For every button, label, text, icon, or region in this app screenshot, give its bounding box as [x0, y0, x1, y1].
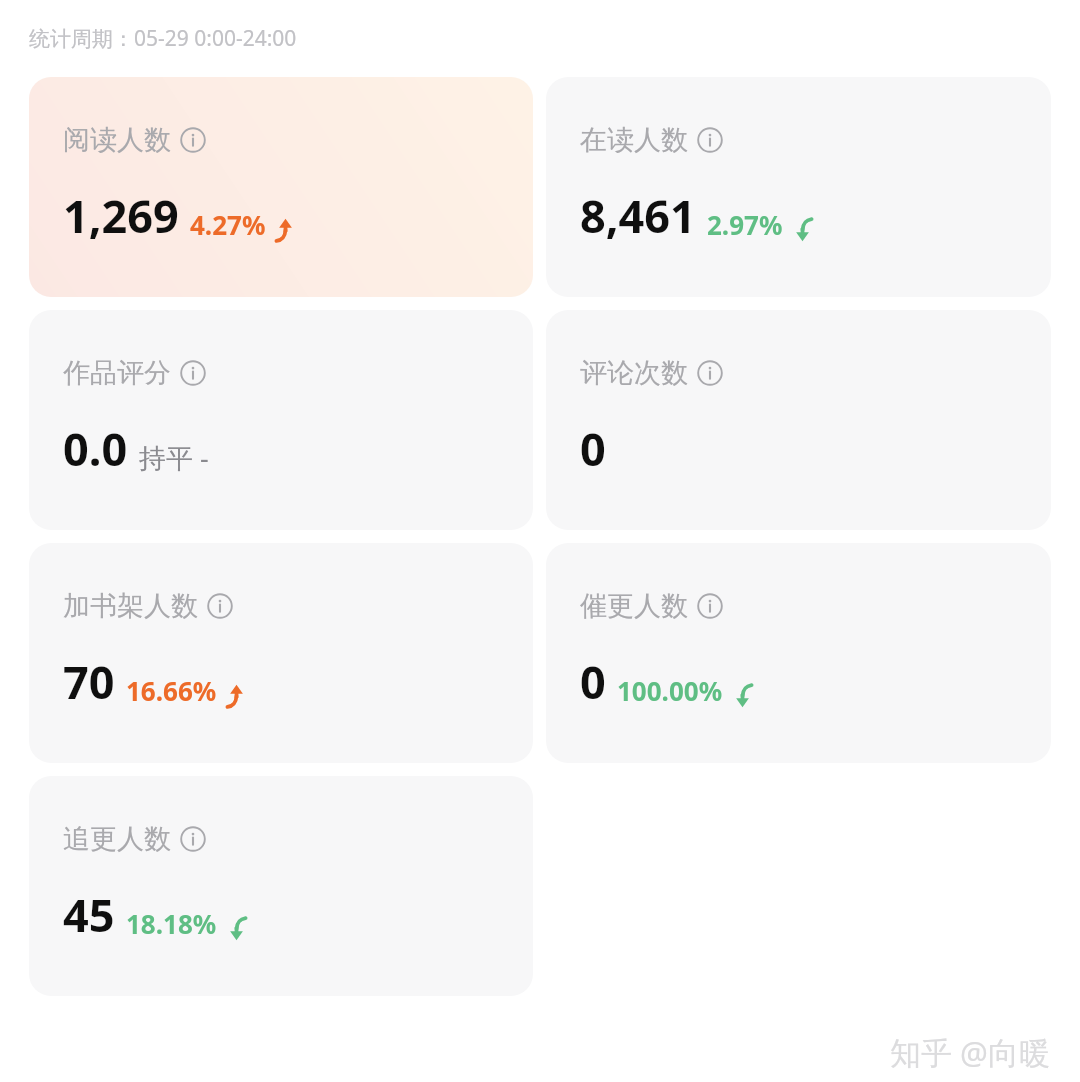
staticText: 4.27% [190, 207, 266, 242]
button[interactable]: 说明 [697, 593, 723, 619]
staticText: 1,269 [63, 185, 179, 246]
button[interactable]: 说明 [697, 360, 723, 386]
button[interactable]: 评论次数 [546, 310, 1051, 530]
staticText: 45 [63, 884, 115, 945]
button[interactable]: 阅读人数 [29, 77, 533, 297]
button[interactable]: 说明 [180, 826, 206, 852]
staticText: 统计周期：05-29 0:00-24:00 [29, 24, 297, 53]
staticText: 追更人数 [63, 822, 171, 856]
staticText: 持平 - [139, 439, 209, 476]
staticText: 评论次数 [580, 356, 688, 390]
button[interactable]: 说明 [180, 360, 206, 386]
staticText: 在读人数 [580, 123, 688, 157]
button[interactable]: 追更人数 [29, 776, 533, 996]
staticText: 2.97% [707, 207, 783, 242]
staticText: 100.00% [617, 673, 723, 708]
button[interactable]: 加书架人数 [29, 543, 533, 763]
staticText: 加书架人数 [63, 589, 198, 623]
button[interactable]: 说明 [207, 593, 233, 619]
staticText: 0.0 [63, 418, 128, 479]
staticText: 0 [580, 651, 606, 712]
staticText: 16.66% [126, 673, 217, 708]
staticText: 8,461 [580, 185, 696, 246]
staticText: 作品评分 [63, 356, 171, 390]
button[interactable]: 在读人数 [546, 77, 1051, 297]
staticText: 阅读人数 [63, 123, 171, 157]
button[interactable]: 说明 [180, 127, 206, 153]
staticText: 0 [580, 418, 606, 479]
staticText: 70 [63, 651, 115, 712]
staticText: 知乎 @向暖 [890, 1031, 1050, 1073]
button[interactable]: 作品评分 [29, 310, 533, 530]
button[interactable]: 说明 [697, 127, 723, 153]
button[interactable]: 催更人数 [546, 543, 1051, 763]
staticText: 催更人数 [580, 589, 688, 623]
staticText: 18.18% [126, 906, 217, 941]
